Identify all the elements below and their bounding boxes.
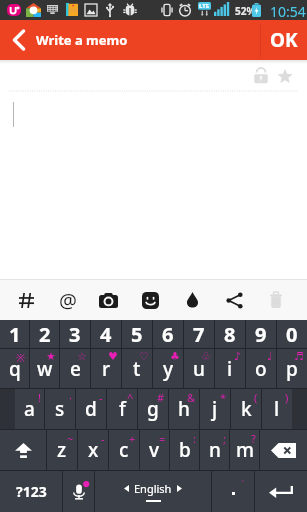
- staticText: ♣: [170, 350, 180, 363]
- staticText: 4: [100, 321, 112, 348]
- staticText: &: [187, 390, 196, 405]
- button[interactable]: ^: [107, 389, 137, 429]
- staticText: j: [212, 396, 218, 422]
- staticText: v: [149, 437, 160, 463]
- button[interactable]: 8: [215, 320, 245, 348]
- button[interactable]: :: [170, 430, 199, 470]
- button[interactable]: 0: [277, 320, 307, 348]
- button[interactable]: (: [231, 389, 261, 429]
- button[interactable]: ♧: [184, 349, 214, 388]
- button[interactable]: 2: [30, 320, 59, 348]
- staticText: l: [274, 396, 280, 422]
- staticText: ★: [46, 350, 56, 363]
- button[interactable]: Emoji: [129, 280, 171, 320]
- staticText: ♪: [234, 350, 242, 363]
- button[interactable]: -: [78, 430, 108, 470]
- staticText: @: [59, 287, 77, 314]
- button[interactable]: ~: [47, 430, 77, 470]
- staticText: q: [9, 356, 21, 382]
- button[interactable]: 6: [153, 320, 183, 348]
- staticText: LTE: [199, 2, 210, 10]
- button[interactable]: Back: [0, 20, 38, 60]
- staticText: 3: [69, 321, 81, 348]
- staticText: English: [134, 481, 172, 496]
- button[interactable]: ※: [0, 349, 29, 388]
- staticText: o: [255, 356, 267, 382]
- button[interactable]: =: [140, 430, 169, 470]
- staticText: #: [157, 390, 165, 405]
- button[interactable]: Delete: [255, 280, 297, 320]
- button[interactable]: ★: [30, 349, 59, 388]
- staticText: p: [286, 356, 298, 382]
- button[interactable]: ☆: [60, 349, 90, 388]
- button[interactable]: Lock: [251, 66, 270, 85]
- button[interactable]: ·: [45, 389, 75, 429]
- button[interactable]: ♥: [91, 349, 121, 388]
- staticText: z: [57, 437, 67, 463]
- button[interactable]: Symbols: [0, 471, 62, 512]
- staticText: c: [119, 437, 129, 463]
- button[interactable]: Voice input: [63, 471, 94, 512]
- staticText: ♧: [201, 350, 211, 363]
- staticText: u: [193, 356, 205, 382]
- button[interactable]: ♪: [215, 349, 245, 388]
- button[interactable]: ♩: [246, 349, 276, 388]
- button[interactable]: 4: [91, 320, 121, 348]
- button[interactable]: 7: [184, 320, 214, 348]
- staticText: ;: [223, 431, 226, 446]
- button[interactable]: -: [76, 389, 106, 429]
- button[interactable]: !: [15, 389, 44, 429]
- button[interactable]: Share: [213, 280, 255, 320]
- staticText: 0: [286, 321, 298, 348]
- button[interactable]: Mention: [47, 280, 88, 320]
- button[interactable]: Shift: [0, 430, 46, 470]
- staticText: ♡: [139, 350, 149, 363]
- button[interactable]: 1: [0, 320, 29, 348]
- button[interactable]: 3: [60, 320, 90, 348]
- staticText: w: [37, 356, 53, 382]
- staticText: ☆: [77, 350, 87, 363]
- button[interactable]: ;: [200, 430, 229, 470]
- button[interactable]: *: [200, 389, 230, 429]
- staticText: k: [241, 396, 252, 422]
- staticText: ♬: [294, 350, 304, 363]
- staticText: d: [85, 396, 97, 422]
- staticText: 7: [193, 321, 205, 348]
- staticText: s: [55, 396, 65, 422]
- button[interactable]: OK: [261, 20, 307, 60]
- staticText: ): [285, 390, 289, 405]
- staticText: g: [147, 396, 159, 422]
- staticText: h: [178, 396, 190, 422]
- staticText: 1: [9, 321, 21, 348]
- button[interactable]: Ink: [171, 280, 213, 320]
- button[interactable]: #: [138, 389, 168, 429]
- button[interactable]: 9: [246, 320, 276, 348]
- staticText: i: [227, 356, 233, 382]
- staticText: 52%: [235, 4, 256, 18]
- button[interactable]: +: [109, 430, 139, 470]
- button[interactable]: Favorite: [275, 66, 294, 85]
- button[interactable]: Period: [212, 471, 254, 512]
- staticText: ?123: [16, 482, 47, 501]
- button[interactable]: ♡: [122, 349, 152, 388]
- button[interactable]: ): [262, 389, 292, 429]
- button[interactable]: ?: [230, 430, 259, 470]
- button[interactable]: Enter: [255, 471, 307, 512]
- button[interactable]: &: [169, 389, 199, 429]
- button[interactable]: Space: [95, 471, 211, 512]
- button[interactable]: Backspace: [260, 430, 307, 470]
- button[interactable]: Hashtag: [6, 280, 47, 320]
- staticText: ·: [69, 390, 72, 405]
- staticText: (: [254, 390, 258, 405]
- button[interactable]: 5: [122, 320, 152, 348]
- staticText: t: [133, 356, 141, 382]
- button[interactable]: Camera: [88, 280, 129, 320]
- staticText: 9: [255, 321, 267, 348]
- staticText: *: [220, 390, 227, 405]
- staticText: n: [209, 437, 221, 463]
- staticText: 6: [162, 321, 174, 348]
- staticText: b: [179, 437, 191, 463]
- staticText: 5: [131, 321, 143, 348]
- button[interactable]: ♬: [277, 349, 307, 388]
- button[interactable]: ♣: [153, 349, 183, 388]
